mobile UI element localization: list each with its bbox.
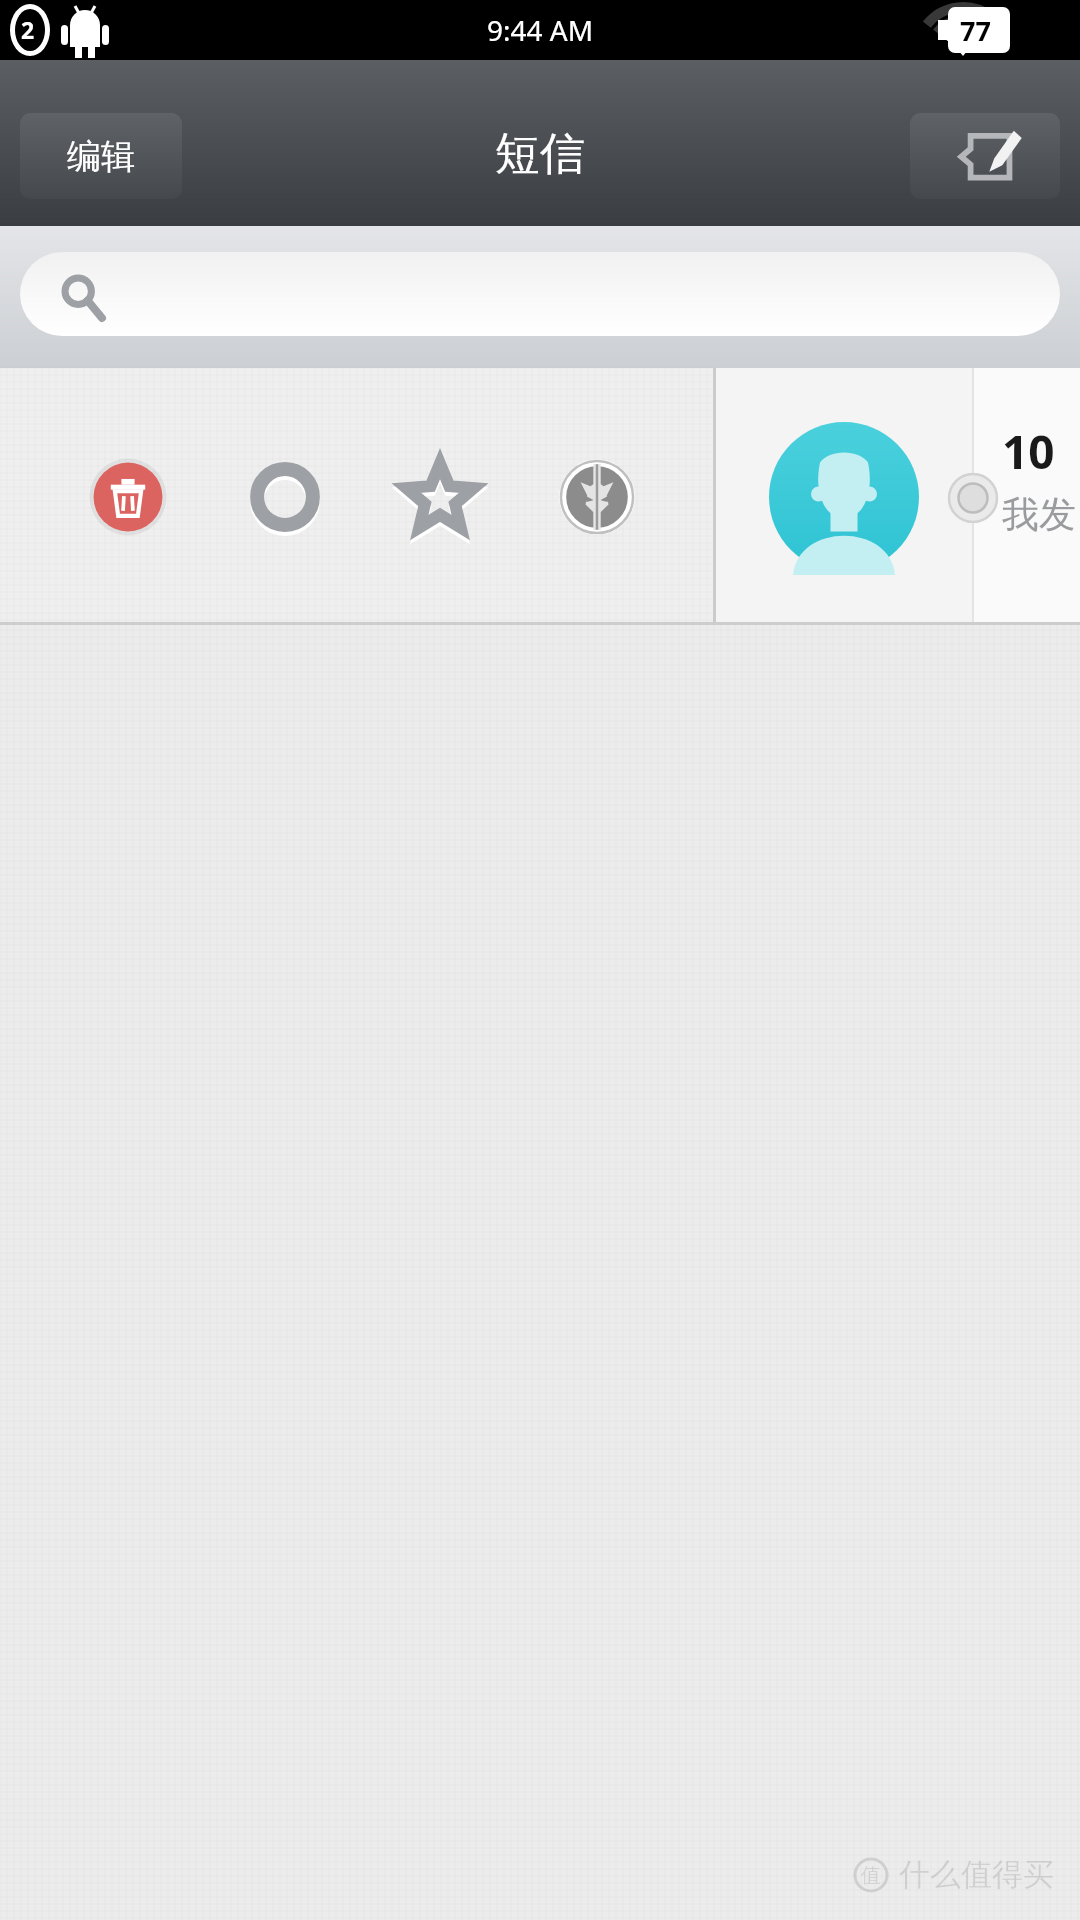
button[interactable]: Favorite	[399, 456, 481, 538]
button[interactable]: Unread	[948, 473, 998, 523]
staticText: 77	[960, 12, 991, 49]
staticText: 2	[21, 14, 35, 45]
button[interactable]: 短信	[495, 126, 585, 183]
button[interactable]: Delete	[87, 456, 169, 538]
button[interactable]: 编辑	[20, 113, 182, 199]
staticText: 编辑	[67, 135, 135, 178]
button[interactable]	[20, 252, 1060, 336]
button[interactable]: 10	[972, 368, 1080, 625]
staticText: 值	[861, 1863, 881, 1888]
staticText: 什么值得买	[899, 1855, 1054, 1894]
staticText: 我发	[1002, 491, 1076, 538]
staticText: 10	[1002, 420, 1055, 483]
button[interactable]: Block	[556, 456, 638, 538]
button[interactable]	[716, 368, 972, 625]
staticText: 9:44 AM	[487, 11, 594, 49]
button[interactable]: Mark unread	[244, 456, 326, 538]
button[interactable]: Compose message	[910, 113, 1060, 199]
